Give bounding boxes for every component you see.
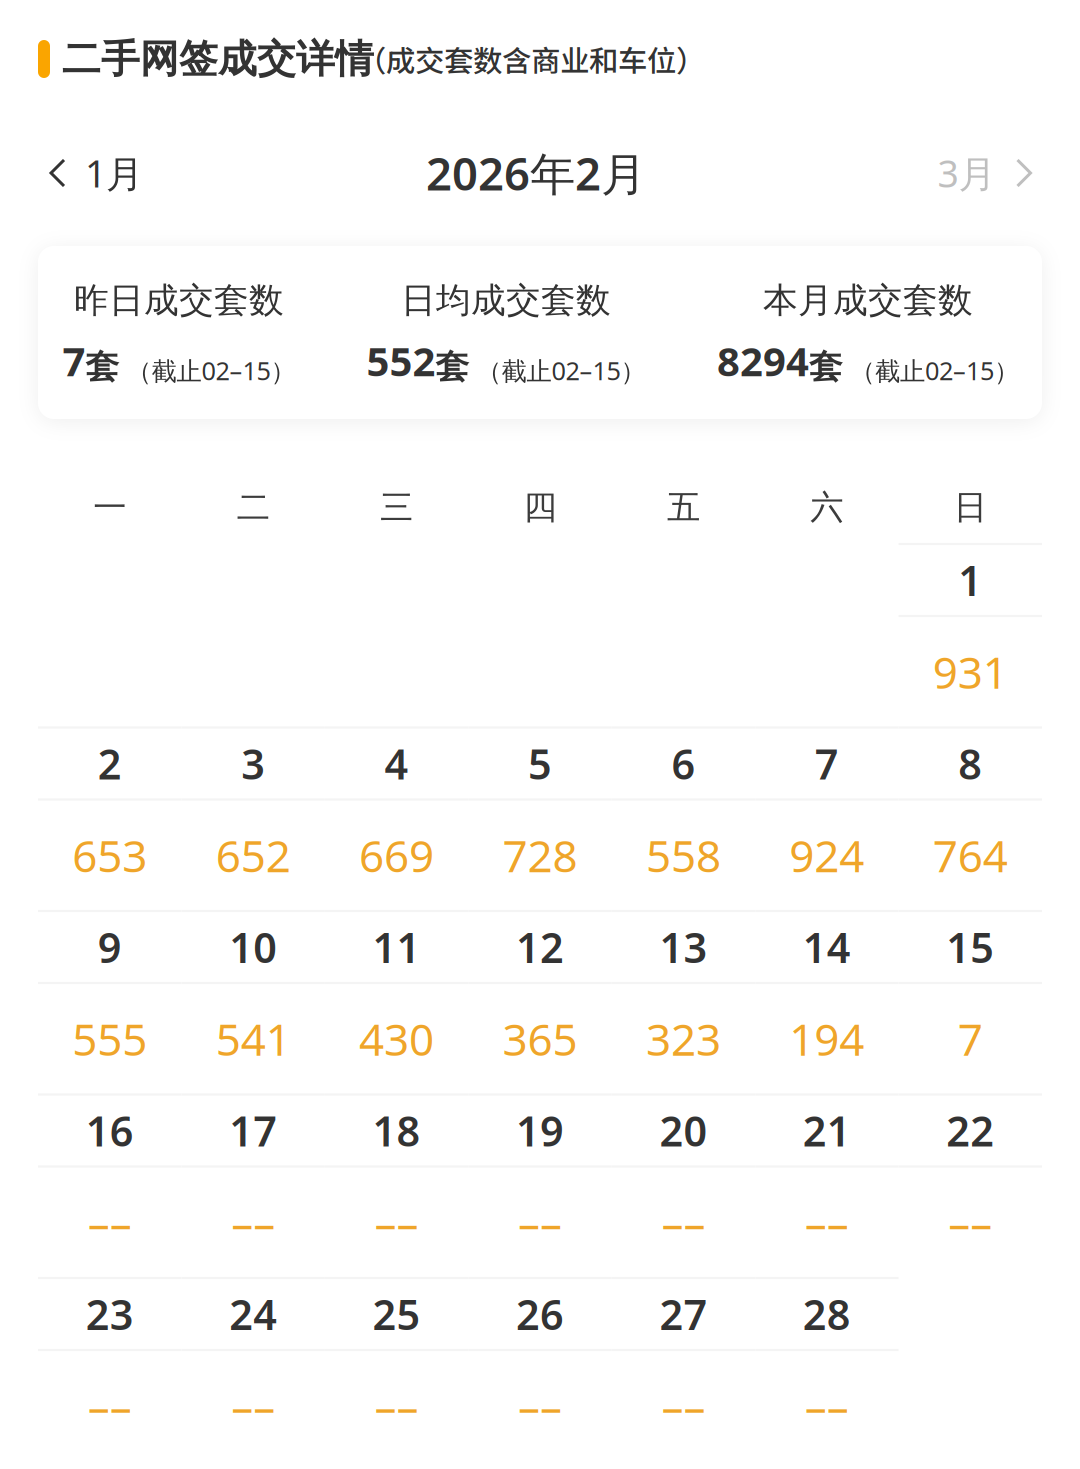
- staticText: 4: [385, 736, 409, 791]
- staticText: 15: [946, 920, 994, 974]
- staticText: 1: [958, 553, 982, 607]
- button[interactable]: 7: [755, 727, 898, 911]
- staticText: ––: [88, 1376, 132, 1435]
- staticText: 728: [502, 826, 577, 884]
- staticText: 541: [216, 1009, 291, 1068]
- staticText: 套: [85, 346, 118, 387]
- staticText: （截止02–15）: [842, 354, 1019, 387]
- staticText: ––: [375, 1376, 419, 1435]
- staticText: 套: [809, 346, 842, 387]
- button[interactable]: 16: [38, 1094, 181, 1278]
- button[interactable]: 14: [755, 911, 898, 1094]
- staticText: 194: [789, 1009, 864, 1068]
- staticText: 26: [516, 1287, 564, 1341]
- button[interactable]: 20: [612, 1094, 755, 1278]
- staticText: 套: [435, 346, 468, 387]
- button[interactable]: 3: [181, 727, 325, 911]
- staticText: ––: [88, 1193, 132, 1251]
- button[interactable]: 2: [38, 727, 181, 911]
- staticText: 22: [946, 1103, 994, 1158]
- staticText: 7: [958, 1009, 983, 1068]
- staticText: 一: [93, 487, 126, 528]
- staticText: 652: [216, 826, 291, 884]
- staticText: 6: [671, 736, 695, 791]
- button[interactable]: 19: [468, 1094, 612, 1278]
- button[interactable]: 15: [899, 911, 1042, 1094]
- staticText: 20: [659, 1103, 707, 1158]
- staticText: 7: [815, 736, 839, 791]
- button[interactable]: 22: [899, 1094, 1042, 1278]
- button[interactable]: 26: [468, 1278, 612, 1461]
- button[interactable]: 5: [468, 727, 612, 911]
- staticText: 552: [366, 334, 435, 387]
- staticText: 12: [516, 920, 564, 974]
- staticText: 昨日成交套数: [74, 279, 284, 322]
- staticText: 8: [958, 736, 982, 791]
- staticText: 18: [373, 1103, 421, 1158]
- staticText: 323: [646, 1009, 721, 1068]
- staticText: 日均成交套数: [401, 279, 611, 322]
- button[interactable]: 21: [755, 1094, 898, 1278]
- button[interactable]: 13: [612, 911, 755, 1094]
- staticText: 本月成交套数: [763, 279, 973, 322]
- staticText: 669: [359, 826, 434, 884]
- staticText: 7: [62, 334, 85, 387]
- button[interactable]: 10: [181, 911, 325, 1094]
- staticText: 21: [803, 1103, 851, 1158]
- button[interactable]: 18: [325, 1094, 468, 1278]
- button[interactable]: 8: [899, 727, 1042, 911]
- staticText: 9: [98, 920, 122, 974]
- staticText: 24: [229, 1287, 277, 1341]
- staticText: 23: [86, 1287, 134, 1341]
- staticText: 16: [86, 1103, 134, 1158]
- staticText: 430: [359, 1009, 434, 1068]
- staticText: ––: [375, 1193, 419, 1251]
- staticText: 27: [659, 1287, 707, 1341]
- button[interactable]: 25: [325, 1278, 468, 1461]
- button[interactable]: 12: [468, 911, 612, 1094]
- staticText: ––: [661, 1376, 705, 1435]
- button[interactable]: 1月: [0, 127, 248, 219]
- button[interactable]: 23: [38, 1278, 181, 1461]
- staticText: 555: [72, 1009, 147, 1068]
- button[interactable]: 6: [612, 727, 755, 911]
- staticText: ––: [948, 1193, 992, 1251]
- staticText: （截止02–15）: [468, 354, 645, 387]
- staticText: 三: [380, 487, 413, 528]
- button[interactable]: 1: [899, 544, 1042, 727]
- staticText: 558: [646, 826, 721, 884]
- staticText: 1月: [85, 148, 143, 198]
- staticText: 二: [237, 487, 270, 528]
- staticText: 14: [803, 920, 851, 974]
- staticText: 8294: [717, 334, 809, 387]
- staticText: 日: [954, 487, 987, 528]
- staticText: 六: [810, 487, 843, 528]
- staticText: 931: [933, 642, 1008, 701]
- staticText: 2: [98, 736, 122, 791]
- staticText: ––: [805, 1193, 849, 1251]
- staticText: 四: [523, 487, 556, 528]
- button[interactable]: 11: [325, 911, 468, 1094]
- staticText: 2026年2月: [426, 143, 646, 203]
- button[interactable]: 9: [38, 911, 181, 1094]
- button[interactable]: 27: [612, 1278, 755, 1461]
- button[interactable]: 3月: [873, 127, 1080, 219]
- staticText: 19: [516, 1103, 564, 1158]
- button[interactable]: 4: [325, 727, 468, 911]
- staticText: 二手网签成交详情: [62, 35, 374, 83]
- button[interactable]: 28: [755, 1278, 898, 1461]
- staticText: 3: [241, 736, 265, 791]
- staticText: （成交套数含商业和车位）: [357, 38, 705, 80]
- button[interactable]: 24: [181, 1278, 325, 1461]
- button[interactable]: 17: [181, 1094, 325, 1278]
- staticText: 10: [229, 920, 277, 974]
- staticText: 3月: [937, 148, 995, 198]
- staticText: ––: [231, 1193, 275, 1251]
- staticText: 13: [659, 920, 707, 974]
- staticText: 5: [528, 736, 552, 791]
- staticText: 25: [373, 1287, 421, 1341]
- staticText: ––: [518, 1376, 562, 1435]
- staticText: ––: [518, 1193, 562, 1251]
- staticText: 764: [933, 826, 1008, 884]
- staticText: 365: [502, 1009, 577, 1068]
